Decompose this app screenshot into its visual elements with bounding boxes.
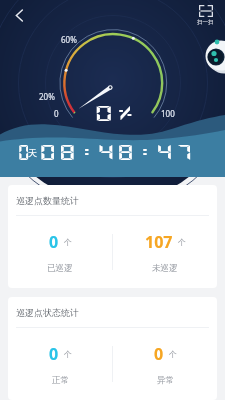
staticText: 个 <box>64 349 72 359</box>
staticText: 0 <box>54 108 59 119</box>
staticText: 扫一扫 <box>197 19 214 26</box>
staticText: 巡逻点状态统计 <box>16 307 79 318</box>
staticText: 0 <box>154 343 164 365</box>
button[interactable]: 扫一扫 <box>194 3 217 27</box>
staticText: 100 <box>161 108 175 119</box>
button[interactable]: 巡逻点状态统计 <box>8 297 217 400</box>
staticText: 20% <box>39 91 55 102</box>
staticText: 个 <box>178 237 186 247</box>
staticText: 0 <box>17 142 32 161</box>
staticText: 个 <box>64 237 72 247</box>
staticText: 天 <box>28 147 37 158</box>
staticText: 0 <box>49 343 59 365</box>
staticText: 0 <box>49 231 59 253</box>
staticText: 正常 <box>52 375 69 386</box>
staticText: 未巡逻 <box>152 263 178 274</box>
staticText: 已巡逻 <box>47 263 73 274</box>
staticText: 个 <box>169 349 177 359</box>
button[interactable]: 返回 <box>6 2 32 28</box>
staticText: 异常 <box>157 375 174 386</box>
staticText: 107 <box>145 231 173 253</box>
staticText: 08:48:47 <box>38 142 195 161</box>
staticText: 0% <box>93 103 138 122</box>
staticText: 巡逻点数量统计 <box>16 195 79 206</box>
button[interactable]: 巡逻点数量统计 <box>8 185 217 288</box>
staticText: 60% <box>61 34 77 45</box>
